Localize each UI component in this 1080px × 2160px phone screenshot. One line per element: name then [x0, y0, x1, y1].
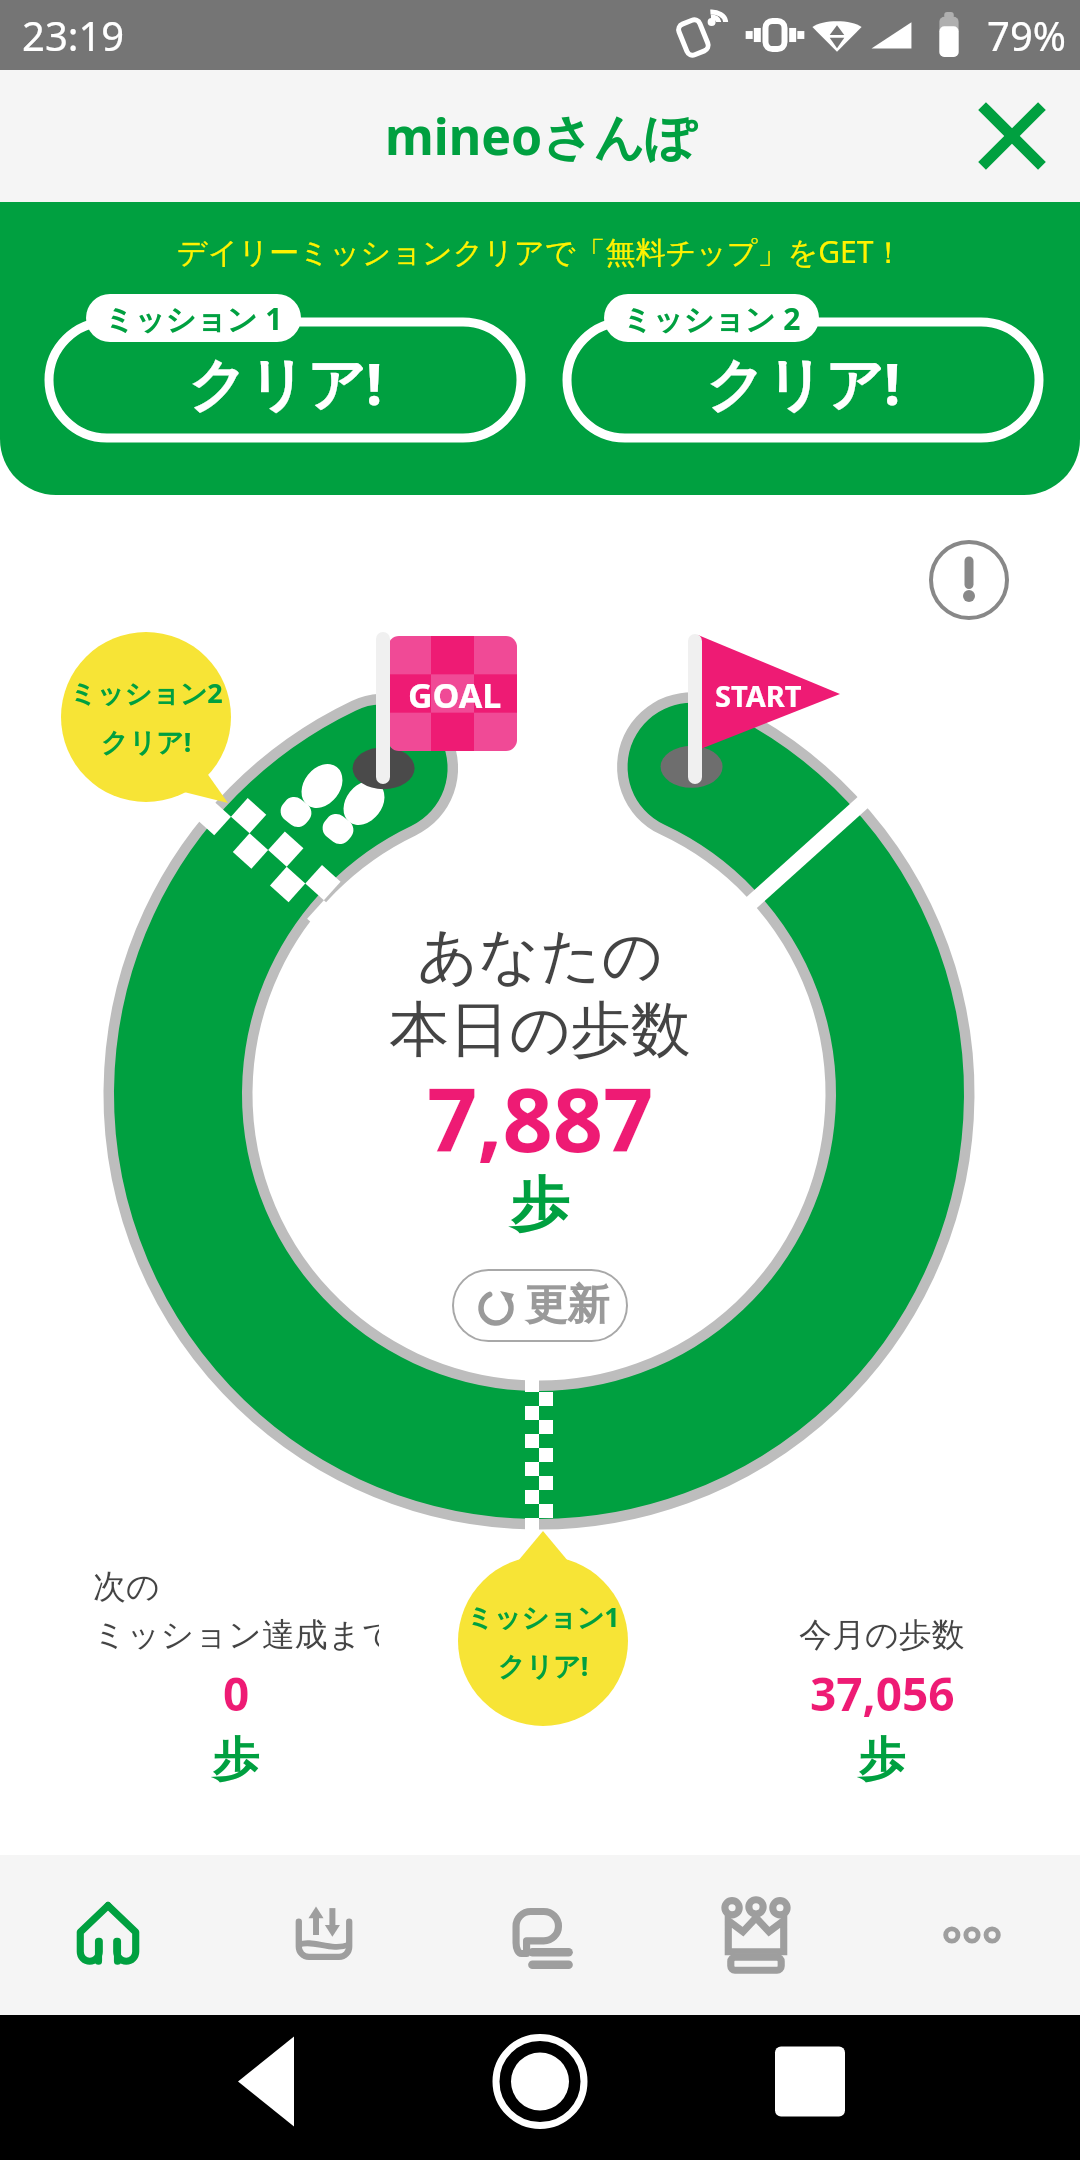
staticText: mineoさんぽ [385, 102, 696, 170]
staticText: デイリーミッションクリアで「無料チップ」をGET！ [177, 231, 904, 272]
staticText: 0 [223, 1662, 250, 1725]
button[interactable]: Close [964, 88, 1060, 184]
button[interactable]: Community [432, 1855, 648, 2015]
staticText: ミッション 2 [622, 298, 801, 339]
staticText: 79% [987, 8, 1066, 62]
staticText: 23:19 [22, 8, 125, 62]
staticText: START [715, 676, 802, 715]
staticText: GOAL [408, 672, 502, 718]
button[interactable]: Rewards [648, 1855, 864, 2015]
button[interactable]: クリア! [562, 294, 1044, 442]
staticText: クリア! [188, 343, 383, 422]
staticText: 歩 [859, 1731, 905, 1789]
staticText: 次の ミッション達成まで [93, 1566, 379, 1656]
button[interactable]: 更新 [452, 1269, 628, 1342]
staticText: ミッション 1 [104, 298, 283, 339]
button[interactable]: More [864, 1855, 1080, 2015]
staticText: 7,887 [427, 1058, 654, 1178]
staticText: ミッション2 クリア! [69, 674, 223, 760]
staticText: あなたの 本日の歩数 [389, 918, 691, 1068]
button[interactable]: Home [0, 1855, 216, 2015]
staticText: 歩 [213, 1731, 259, 1789]
staticText: クリア! [706, 343, 901, 422]
staticText: 今月の歩数 [799, 1614, 965, 1656]
staticText: 更新 [525, 1279, 609, 1332]
button[interactable]: Data [216, 1855, 432, 2015]
button[interactable]: クリア! [44, 294, 526, 442]
staticText: 歩 [511, 1168, 569, 1241]
staticText: ミッション1 クリア! [466, 1598, 620, 1684]
button[interactable]: Information [928, 539, 1010, 621]
staticText: 37,056 [810, 1662, 955, 1725]
